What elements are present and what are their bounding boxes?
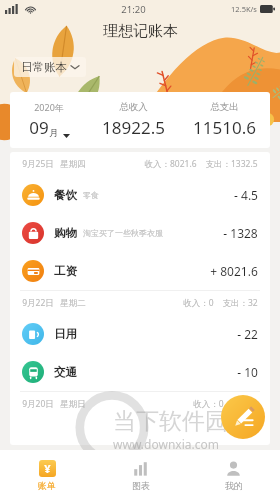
staticText: 日常账本 (21, 60, 67, 74)
button[interactable]: 日用 (10, 315, 270, 353)
staticText: 理想记账本 (103, 22, 178, 41)
staticText: 支出：1332.5 (205, 158, 258, 170)
staticText: 18922.5 (102, 116, 165, 139)
staticText: - 1328 (223, 225, 258, 241)
staticText: 收入：0 (193, 398, 224, 410)
staticText: 总收入 (119, 101, 148, 113)
staticText: 总支出 (210, 101, 239, 113)
staticText: 工资 (54, 264, 77, 278)
button[interactable]: 图表 (94, 450, 187, 500)
staticText: 账单 (38, 480, 56, 491)
button[interactable]: 添加记账 (221, 395, 265, 439)
staticText: 支出：32 (222, 297, 258, 309)
button[interactable]: 购物 (10, 214, 270, 252)
staticText: 9月20日 (22, 398, 54, 410)
staticText: + 8021.6 (210, 263, 258, 279)
staticText: 图表 (132, 480, 150, 491)
staticText: 我的 (225, 480, 243, 491)
button[interactable]: 总收入 (88, 92, 179, 148)
staticText: 收入：8021.6 (144, 158, 197, 170)
staticText: www.downxia.com (113, 436, 219, 452)
staticText: ¥ (44, 461, 51, 476)
staticText: 收入：0 (183, 297, 214, 309)
button[interactable]: 交通 (10, 353, 270, 391)
button[interactable]: 总支出 (179, 92, 270, 148)
staticText: 餐饮 (54, 188, 77, 202)
staticText: - 22 (237, 326, 258, 342)
staticText: 购物 (54, 226, 77, 240)
button[interactable]: 我的 (187, 450, 280, 500)
staticText: 星期日 (60, 399, 86, 410)
staticText: 9月25日 (22, 158, 54, 170)
staticText: 月 (49, 127, 59, 139)
staticText: 9月22日 (22, 297, 54, 309)
staticText: 当下软件园 (113, 407, 228, 436)
staticText: 交通 (54, 365, 77, 379)
staticText: 星期二 (60, 298, 86, 309)
button[interactable]: 日常账本 (14, 57, 86, 77)
button[interactable]: 2020年 (10, 92, 88, 148)
staticText: 淘宝买了一些秋季衣服 (83, 228, 163, 238)
staticText: 星期四 (60, 159, 86, 170)
staticText: 11510.6 (193, 116, 256, 139)
button[interactable]: ¥ (0, 450, 94, 500)
staticText: 09 (29, 116, 49, 139)
staticText: 21:20 (121, 3, 146, 16)
staticText: 支出： (232, 399, 258, 410)
staticText: 12.5K/s (231, 4, 257, 14)
staticText: - 10 (237, 364, 258, 380)
staticText: - 4.5 (234, 187, 258, 203)
button[interactable]: 餐饮 (10, 176, 270, 214)
staticText: 零食 (83, 190, 99, 200)
button[interactable]: 工资 (10, 252, 270, 290)
staticText: 日用 (54, 327, 77, 341)
staticText: 2020年 (34, 101, 64, 113)
